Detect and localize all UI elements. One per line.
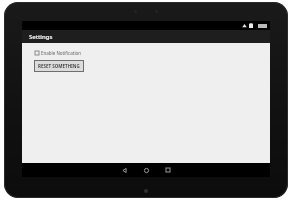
button[interactable]: Enable Notification — [34, 49, 83, 57]
staticText: Enable Notification — [41, 50, 82, 56]
staticText: Settings — [29, 33, 53, 41]
button[interactable]: Home — [135, 163, 157, 177]
button[interactable]: Settings — [28, 32, 54, 42]
staticText: RESET SOMETHING — [38, 63, 80, 69]
button[interactable]: Back — [113, 163, 135, 177]
button[interactable]: RESET SOMETHING — [34, 60, 84, 72]
button[interactable]: Recent apps — [157, 163, 179, 177]
